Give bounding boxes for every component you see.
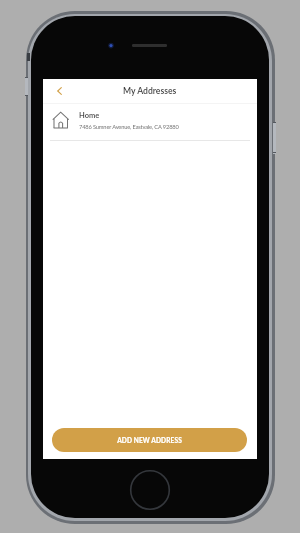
staticText: ADD NEW ADDRESS [117, 436, 182, 444]
staticText: My Addresses [123, 86, 177, 96]
staticText: 7486 Sumner Avenue, Eastvale, CA 92880 [79, 123, 179, 130]
staticText: Home [79, 111, 100, 120]
button[interactable]: ADD NEW ADDRESS [52, 428, 247, 452]
button[interactable]: Back [48, 80, 70, 102]
button[interactable]: Home [43, 102, 257, 138]
